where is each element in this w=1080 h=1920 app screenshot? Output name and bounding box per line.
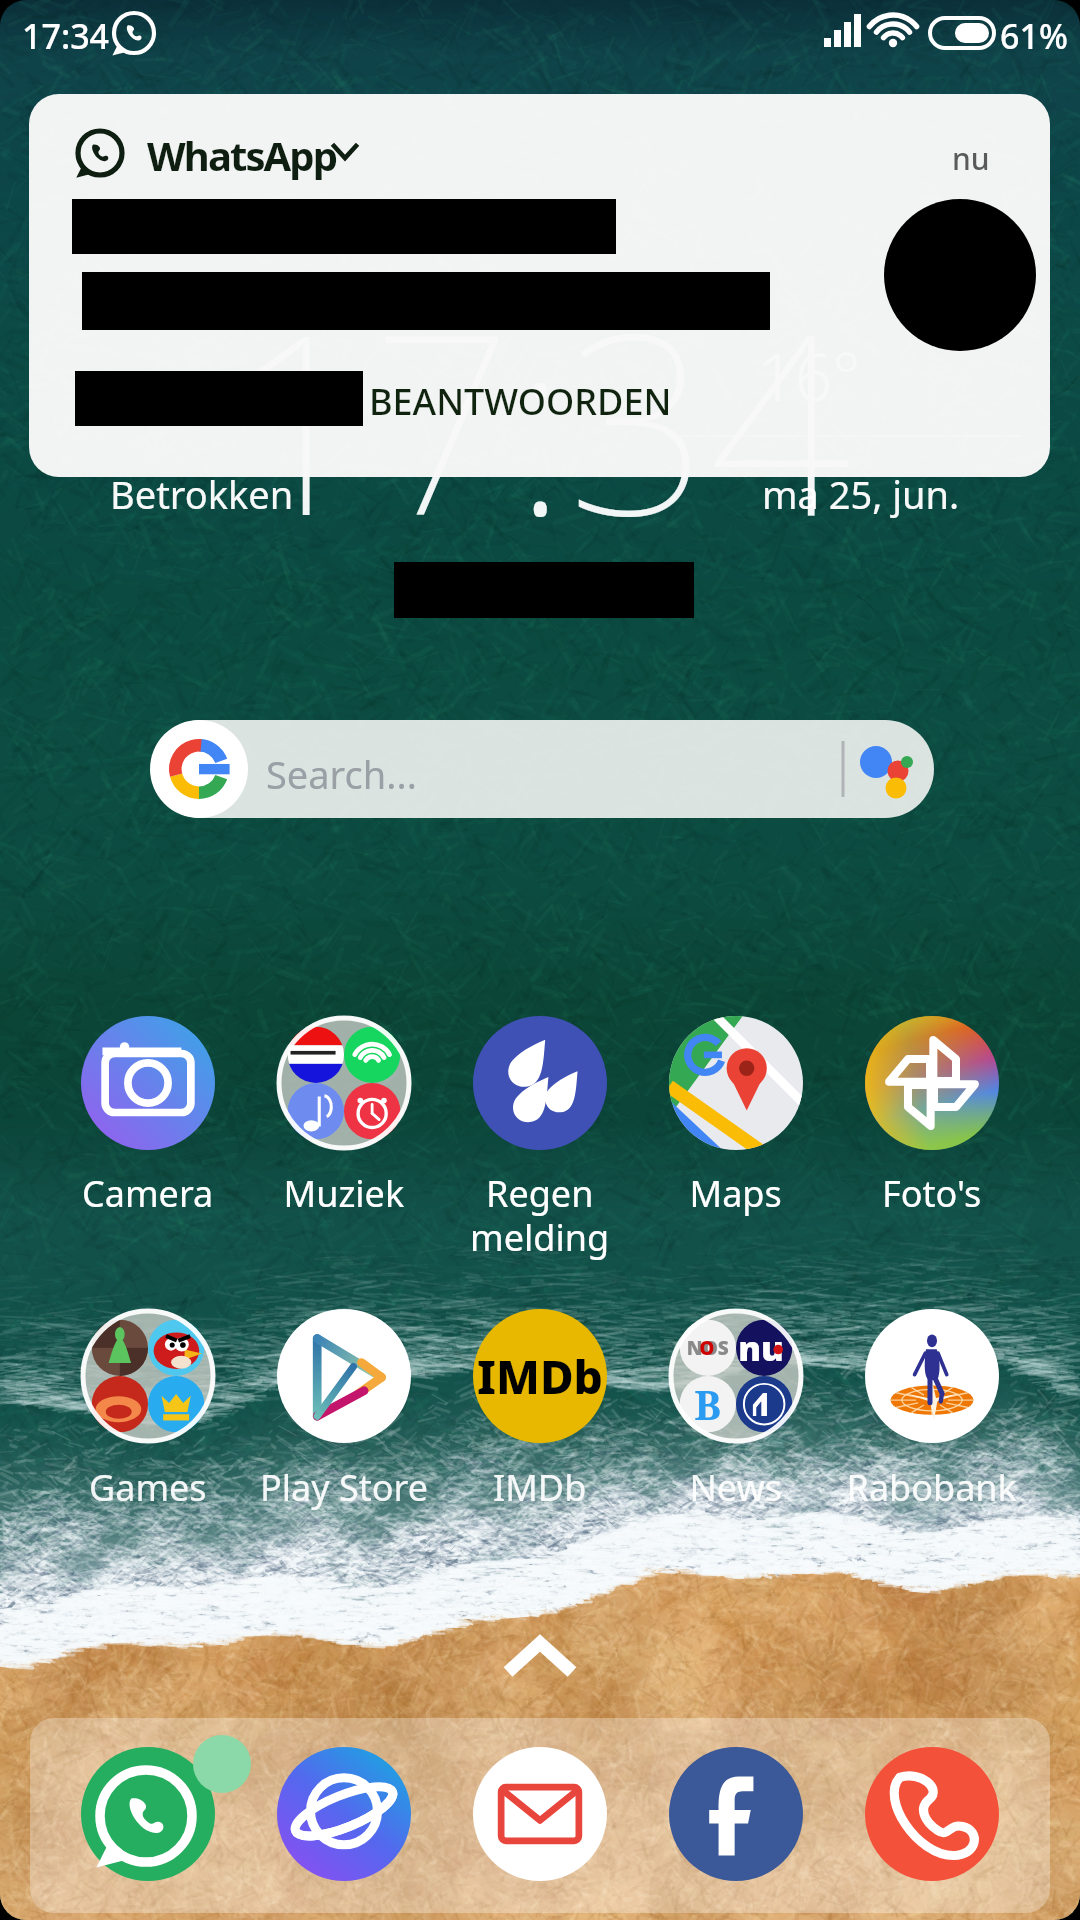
button[interactable]: WhatsApp notification [29,94,1050,477]
button[interactable]: IMDb [473,1309,607,1519]
button[interactable]: Search [152,720,934,818]
button[interactable]: Rabobank [865,1309,999,1519]
button[interactable]: Play Store [277,1309,411,1519]
button[interactable]: Internet [277,1747,411,1881]
button[interactable]: Google [150,720,248,818]
button[interactable]: WhatsApp app name [70,120,370,190]
button[interactable]: Beantwoorden [360,365,680,435]
button[interactable]: Open app drawer [480,1630,600,1700]
button[interactable]: Facebook [669,1747,803,1881]
button[interactable]: Games [81,1309,215,1519]
button[interactable]: Google Assistant [842,720,934,818]
button[interactable]: Regen melding [473,1016,607,1266]
button[interactable]: Email [473,1747,607,1881]
button[interactable]: News [669,1309,803,1519]
button[interactable]: Maps [669,1016,803,1226]
button[interactable]: Foto's [865,1016,999,1226]
button[interactable]: Muziek [277,1016,411,1226]
button[interactable]: Phone [865,1747,999,1881]
button[interactable]: Expand notification [325,130,369,174]
button[interactable]: WhatsApp [81,1747,215,1881]
button[interactable]: Clock widget 17:34, ma 25 jun [100,300,980,540]
button[interactable]: Camera [81,1016,215,1226]
